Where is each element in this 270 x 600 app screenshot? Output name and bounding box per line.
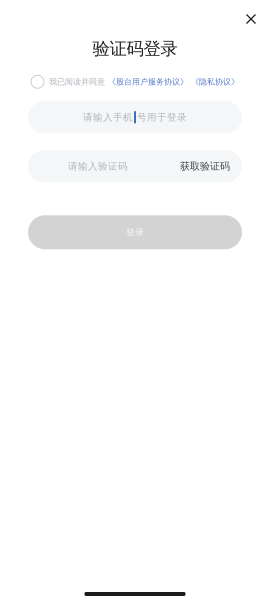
staticText: 号用于登录 [137,111,187,123]
button[interactable]: 《隐私协议》 [188,77,239,87]
staticText: 登录 [126,227,144,238]
staticText: 《隐私协议》 [191,77,239,87]
staticText: 请输入手机 [83,111,133,123]
staticText: 请输入验证码 [68,160,128,172]
staticText: 我已阅读并同意 [49,77,105,87]
button[interactable]: 《股台用户服务协议》 [105,77,188,87]
button[interactable]: 登录 [28,215,242,249]
staticText: 获取验证码 [180,160,230,173]
button[interactable]: 关闭 [239,7,263,31]
staticText: 验证码登录 [92,38,177,59]
button[interactable]: 同意协议 [31,75,44,88]
button[interactable]: 获取验证码 [168,150,242,182]
staticText: 《股台用户服务协议》 [108,77,188,87]
